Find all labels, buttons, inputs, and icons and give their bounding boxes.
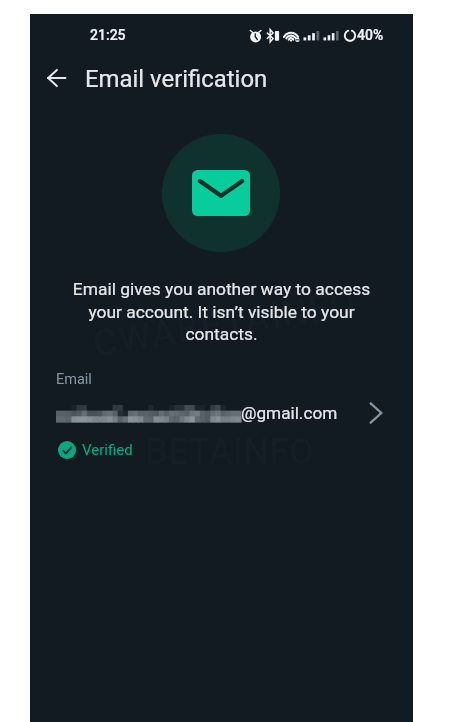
staticText: Verified — [82, 441, 133, 459]
staticText: Email verification — [85, 65, 268, 93]
staticText: 40% — [357, 27, 384, 43]
staticText: 21:25 — [90, 27, 126, 43]
staticText: Email — [56, 371, 92, 388]
staticText: @gmail.com — [241, 403, 369, 423]
staticText: Email gives you another way to access yo… — [62, 279, 381, 344]
button[interactable]: Back — [36, 58, 76, 98]
button[interactable]: @gmail.com — [30, 391, 413, 435]
staticText: CWABETAINFO — [90, 281, 360, 366]
